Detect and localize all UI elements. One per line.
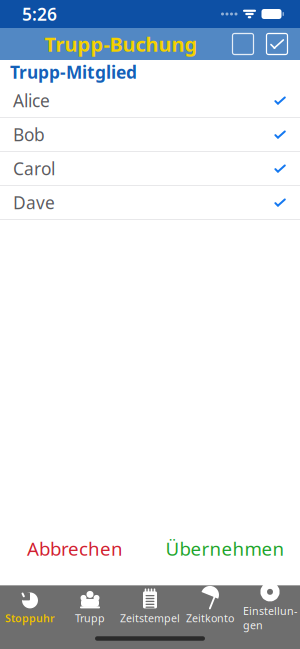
button[interactable]: Alice <box>0 84 300 118</box>
button[interactable]: Stoppuhr <box>0 586 60 628</box>
button[interactable]: Zeitkonto <box>180 586 240 628</box>
button[interactable]: Zeitstempel <box>120 586 180 628</box>
button[interactable]: Einstellungen <box>240 586 300 628</box>
staticText: 5:26 <box>22 2 57 25</box>
staticText: Trupp <box>75 611 105 625</box>
button[interactable]: Alle auswählen <box>260 30 294 58</box>
button[interactable]: Abbrechen <box>0 533 150 563</box>
staticText: Alice <box>13 89 50 112</box>
staticText: Zeitkonto <box>186 611 234 625</box>
button[interactable]: Bob <box>0 118 300 152</box>
button[interactable]: Übernehmen <box>150 533 300 563</box>
staticText: Abbrechen <box>27 536 123 561</box>
staticText: Bob <box>13 123 45 146</box>
button[interactable]: Carol <box>0 152 300 186</box>
staticText: Trupp-Buchung <box>44 31 197 57</box>
staticText: Carol <box>13 157 55 180</box>
staticText: Übernehmen <box>165 536 284 561</box>
staticText: Einstellungen <box>243 604 297 632</box>
staticText: Stoppuhr <box>5 611 55 625</box>
button[interactable]: Trupp <box>60 586 120 628</box>
staticText: Dave <box>13 191 55 214</box>
staticText: Trupp-Mitglied <box>10 60 137 83</box>
button[interactable]: Dave <box>0 186 300 220</box>
button[interactable]: Alle abwählen <box>226 30 260 58</box>
staticText: Zeitstempel <box>120 611 180 625</box>
